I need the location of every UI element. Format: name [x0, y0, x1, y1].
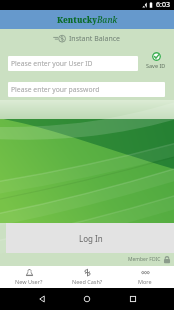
- staticText: Please enter your User ID: [11, 59, 93, 68]
- staticText: Need Cash?: [72, 278, 103, 285]
- staticText: Member FDIC: [128, 256, 161, 263]
- staticText: More: [138, 278, 152, 285]
- staticText: Bank: [97, 14, 118, 25]
- staticText: New User?: [15, 278, 43, 285]
- staticText: Save ID: [146, 62, 166, 69]
- button[interactable]: Log In: [6, 223, 174, 253]
- button[interactable]: Need Cash?: [58, 266, 116, 287]
- other: Home: [83, 295, 91, 303]
- other: Secure: [163, 255, 171, 264]
- staticText: Instant Balance: [69, 34, 121, 44]
- staticText: 6:03: [156, 0, 170, 10]
- staticText: Log In: [79, 233, 103, 244]
- staticText: Please enter your password: [11, 85, 100, 94]
- button[interactable]: Please enter your password: [8, 82, 165, 97]
- button[interactable]: Please enter your User ID: [8, 56, 138, 71]
- staticText: Kentucky: [57, 14, 97, 25]
- button[interactable]: More: [116, 266, 174, 287]
- button[interactable]: Save ID: [143, 52, 169, 69]
- other: Recents: [129, 295, 137, 303]
- button[interactable]: New User?: [0, 266, 58, 287]
- other: Back: [38, 295, 46, 303]
- button[interactable]: Instant Balance: [0, 29, 174, 48]
